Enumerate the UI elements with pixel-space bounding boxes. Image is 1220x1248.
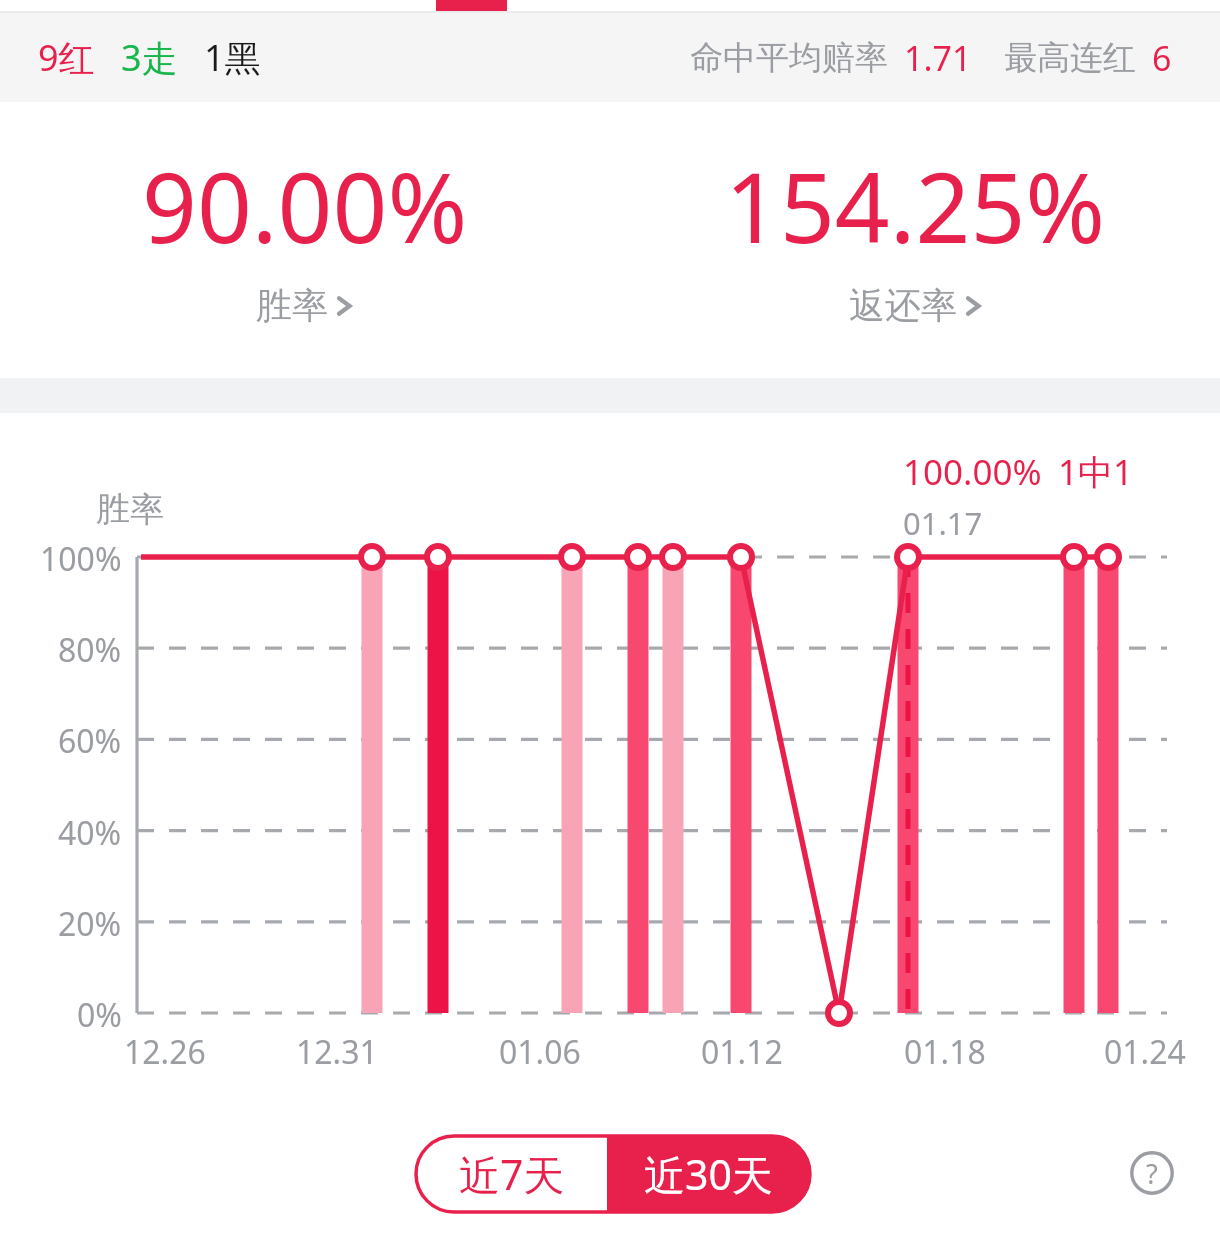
staticText: 最高连红 [1004,37,1136,79]
staticText: 1.71 [904,35,972,81]
staticText: 01.12 [701,1030,783,1074]
staticText: ? [1146,1155,1158,1192]
staticText: 命中平均赔率 [690,37,888,79]
button[interactable]: Help [1130,1151,1174,1195]
staticText: 01.24 [1104,1030,1186,1074]
staticText: 01.18 [904,1030,986,1074]
staticText: 80% [58,628,122,672]
staticText: 0% [77,993,122,1037]
staticText: 返还率 [849,283,957,328]
staticText: 100% [40,537,122,581]
staticText: 近7天 [459,1146,565,1202]
button[interactable]: 90.00% [0,140,610,362]
staticText: 胜率 [96,488,164,531]
staticText: 6 [1152,35,1172,81]
staticText: 40% [58,811,122,855]
staticText: 01.06 [499,1030,581,1074]
staticText: 01.17 [903,502,983,544]
staticText: 3走 [121,33,178,82]
staticText: 1黑 [204,33,261,82]
staticText: 20% [58,902,122,946]
staticText: 100.00% [903,448,1042,496]
button[interactable]: 154.25% [610,140,1220,362]
staticText: 9红 [38,33,95,82]
button[interactable]: 近7天 [416,1136,607,1212]
staticText: 胜率 [256,283,328,328]
button[interactable]: 近30天 [607,1136,810,1212]
staticText: 90.00% [142,140,468,271]
staticText: 12.31 [296,1030,378,1074]
staticText: 12.26 [124,1030,206,1074]
staticText: 154.25% [725,140,1106,271]
staticText: 近30天 [644,1146,773,1202]
staticText: 1中1 [1058,448,1134,496]
staticText: 60% [58,719,122,763]
